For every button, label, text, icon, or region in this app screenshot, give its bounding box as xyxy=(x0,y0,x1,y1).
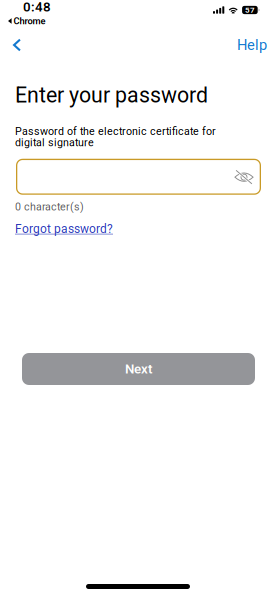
staticText: digital signature xyxy=(15,137,94,149)
staticText: Password of the electronic certificate f… xyxy=(15,125,216,138)
staticText: 0 character(s) xyxy=(15,201,84,213)
staticText: Chrome xyxy=(13,16,45,26)
staticText: 0:48 xyxy=(23,0,51,15)
button[interactable]: Back xyxy=(0,30,34,60)
button[interactable]: Help xyxy=(230,30,274,60)
staticText: 57 xyxy=(245,5,255,14)
button[interactable]: Show password xyxy=(227,160,261,194)
staticText: Enter your password xyxy=(15,83,208,107)
staticText: Forgot password? xyxy=(15,222,113,236)
button[interactable]: Return to Chrome xyxy=(8,16,45,25)
staticText: Next xyxy=(125,361,152,377)
button[interactable]: Forgot password? xyxy=(0,213,113,236)
staticText: Help xyxy=(237,37,267,53)
button[interactable]: Next xyxy=(22,353,255,385)
